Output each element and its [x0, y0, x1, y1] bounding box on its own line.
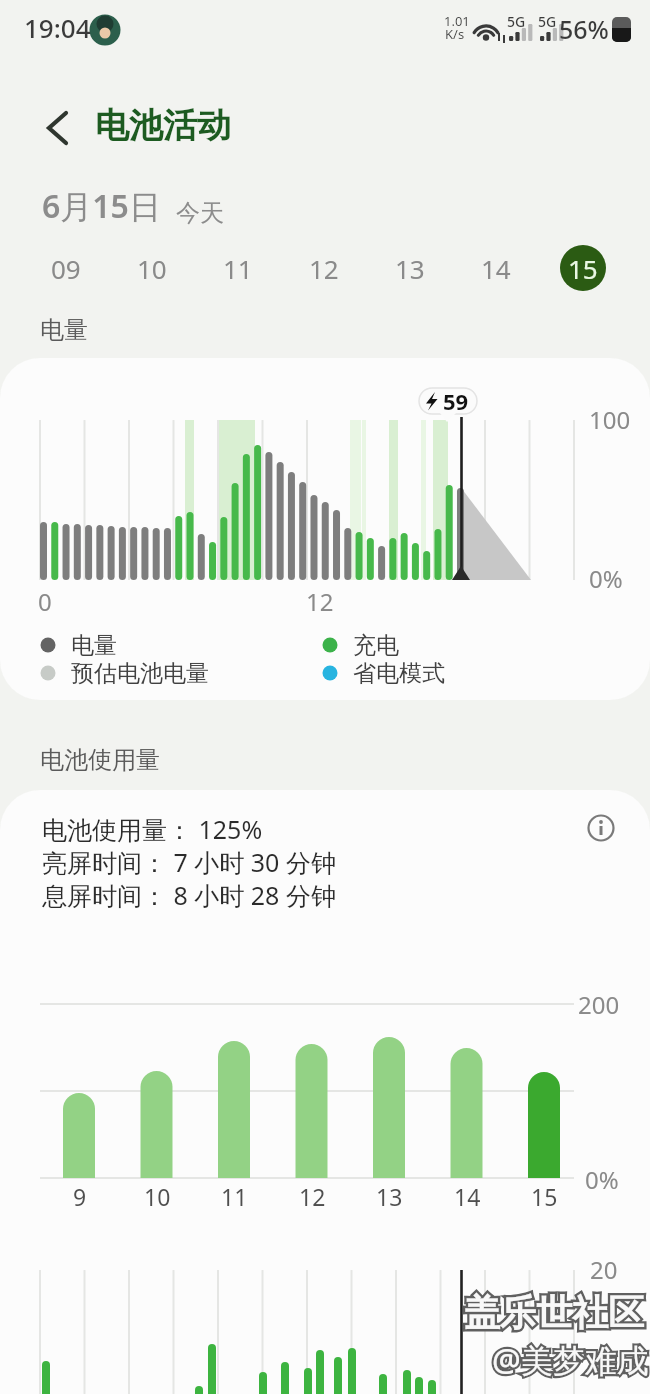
- staticText: 0%: [589, 562, 623, 595]
- staticText: 12: [306, 585, 334, 618]
- staticText: 电池活动: [95, 104, 231, 147]
- staticText: 11: [223, 251, 253, 286]
- staticText: 今天: [176, 198, 224, 228]
- button[interactable]: 14: [472, 244, 520, 292]
- staticText: 100: [589, 403, 631, 436]
- staticText: 盖乐世社区: [464, 1290, 644, 1335]
- staticText: 12: [309, 251, 339, 286]
- staticText: 19:04: [24, 10, 91, 45]
- staticText: 充电: [353, 631, 399, 660]
- staticText: 9: [73, 1181, 87, 1212]
- staticText: 15: [531, 1181, 558, 1212]
- staticText: 59: [443, 386, 469, 416]
- staticText: 电量: [40, 315, 88, 345]
- staticText: 10: [144, 1181, 171, 1212]
- staticText: @美梦难成: [492, 1338, 649, 1382]
- button[interactable]: 15: [560, 245, 606, 291]
- staticText: 5G: [538, 12, 557, 31]
- button[interactable]: [583, 810, 619, 846]
- staticText: 13: [376, 1181, 403, 1212]
- staticText: 10: [137, 251, 167, 286]
- staticText: 09: [51, 251, 81, 286]
- button[interactable]: [36, 104, 82, 150]
- staticText: K/s: [445, 25, 465, 43]
- staticText: 电量: [71, 631, 117, 660]
- staticText: 电池使用量: [40, 745, 160, 775]
- staticText: 5G: [507, 12, 526, 31]
- staticText: 电池使用量： 125%: [42, 812, 263, 846]
- staticText: @美梦难成: [492, 1338, 649, 1382]
- button[interactable]: 11: [214, 244, 262, 292]
- button[interactable]: 10: [128, 244, 176, 292]
- staticText: 0: [38, 585, 52, 618]
- staticText: 20: [590, 1253, 618, 1286]
- staticText: 14: [454, 1181, 481, 1212]
- staticText: 亮屏时间： 7 小时 30 分钟: [42, 845, 336, 879]
- staticText: 预估电池电量: [71, 659, 209, 688]
- staticText: 省电模式: [353, 659, 445, 688]
- staticText: 13: [395, 251, 425, 286]
- staticText: 盖乐世社区: [464, 1290, 644, 1335]
- button[interactable]: 13: [386, 244, 434, 292]
- staticText: 56%: [559, 12, 609, 46]
- staticText: 14: [481, 251, 511, 286]
- staticText: 200: [578, 988, 620, 1021]
- button[interactable]: 09: [42, 244, 90, 292]
- staticText: 息屏时间： 8 小时 28 分钟: [42, 878, 336, 912]
- staticText: 12: [299, 1181, 326, 1212]
- staticText: 11: [221, 1181, 248, 1212]
- button[interactable]: 12: [300, 244, 348, 292]
- staticText: 15: [568, 251, 598, 286]
- staticText: 0%: [585, 1163, 619, 1196]
- staticText: 6月15日: [42, 184, 161, 228]
- staticText: 1.01: [444, 12, 470, 30]
